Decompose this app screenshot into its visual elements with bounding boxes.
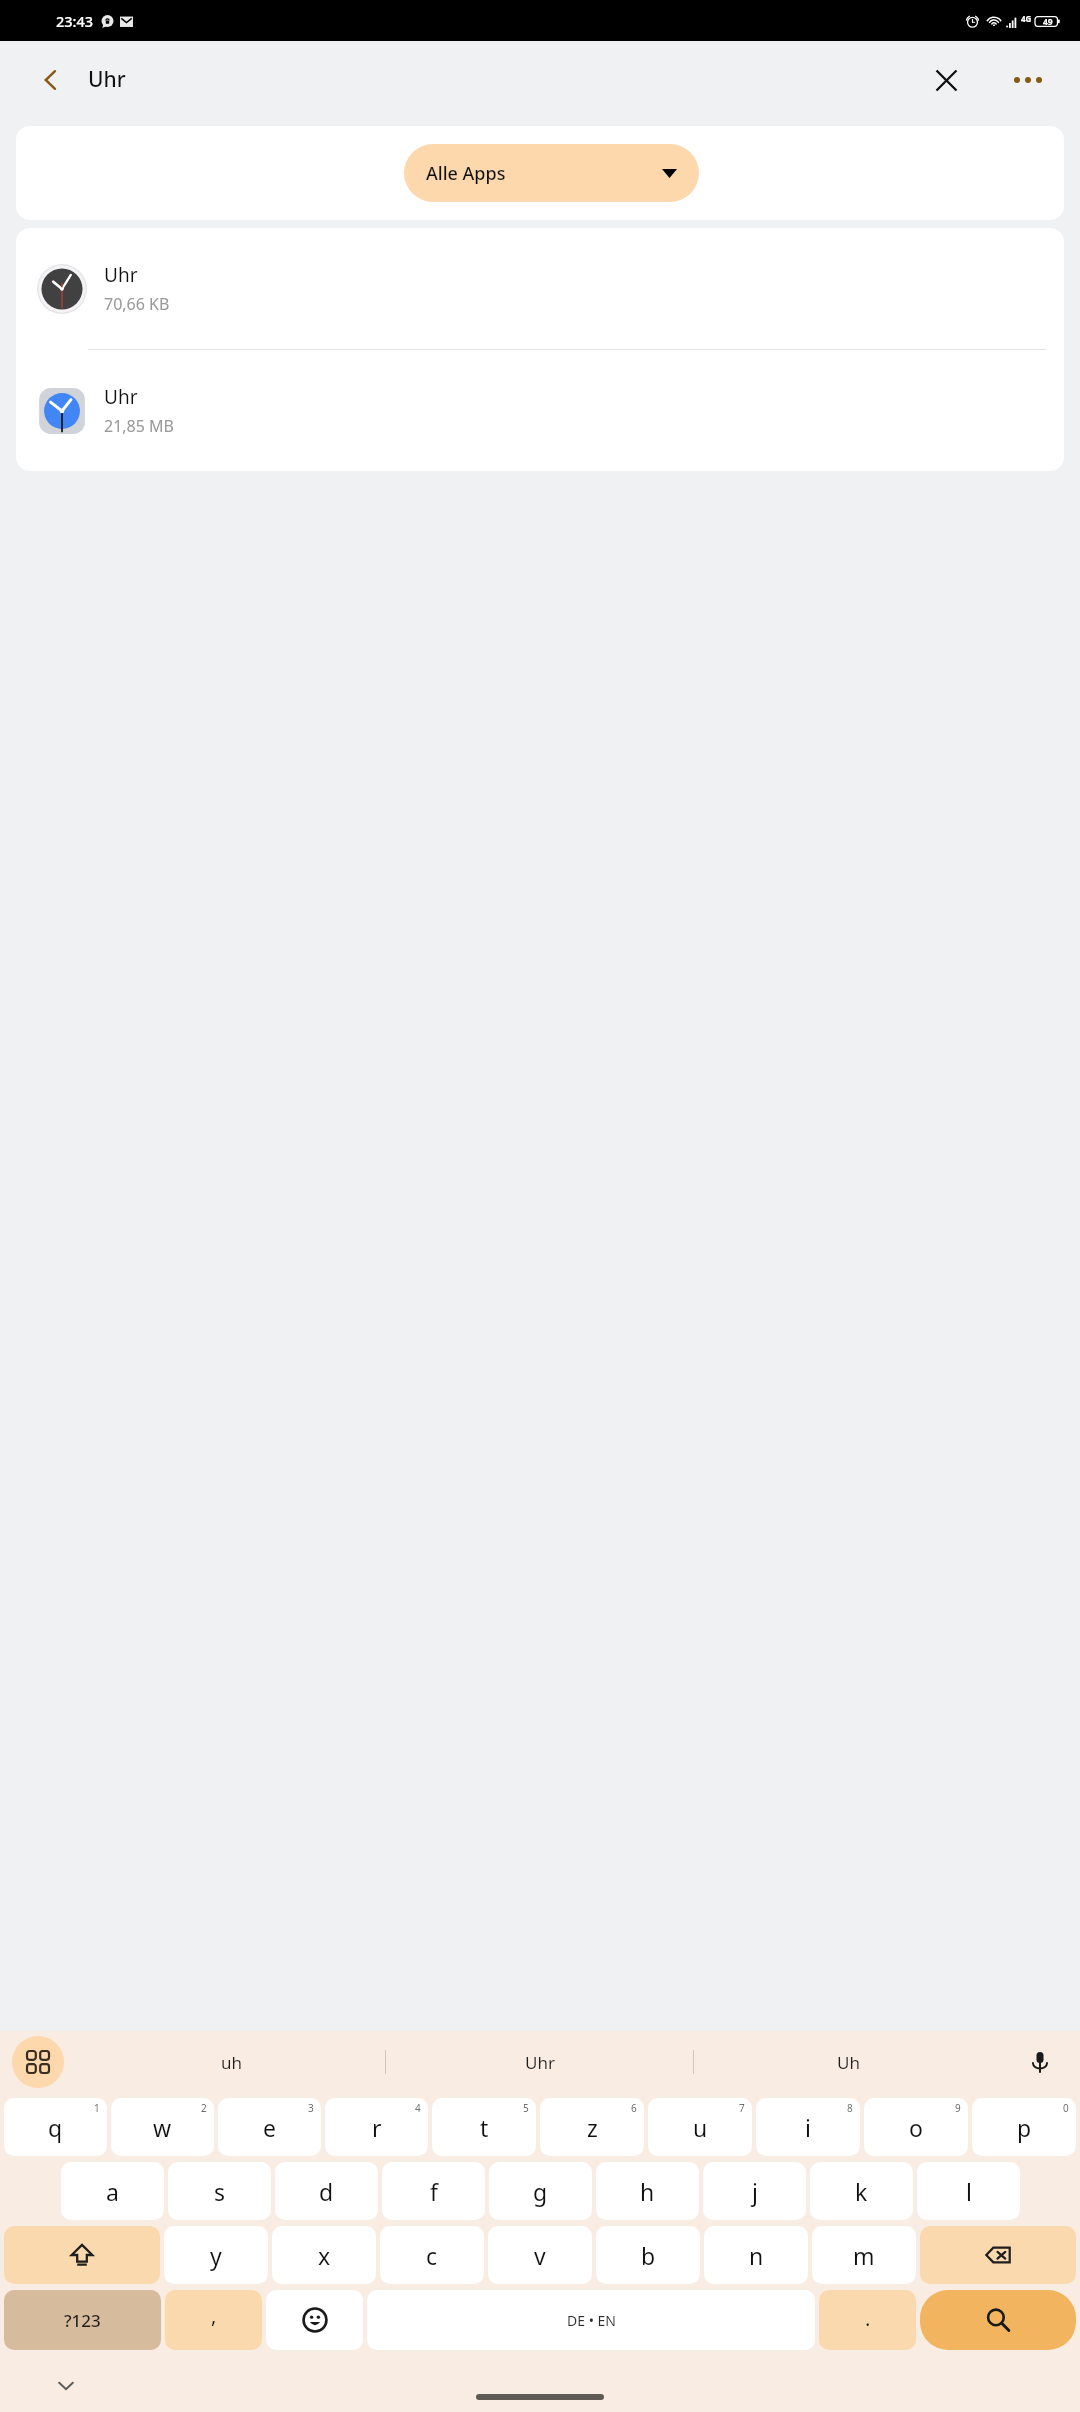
button[interactable]: Voice input [1018, 2040, 1062, 2084]
button[interactable]: Alle Apps [404, 144, 699, 202]
staticText: 5 [523, 2101, 529, 2115]
staticText: 8 [847, 2101, 853, 2115]
button[interactable]: 8 [756, 2098, 860, 2156]
button[interactable]: Backspace [920, 2226, 1076, 2284]
button[interactable]: Clear [918, 52, 974, 108]
staticText: c [426, 2240, 438, 2271]
button[interactable]: y [164, 2226, 268, 2284]
staticText: o [909, 2112, 923, 2143]
button[interactable]: Shift [4, 2226, 160, 2284]
button[interactable]: Keyboard menu [12, 2036, 64, 2088]
button[interactable]: f [382, 2162, 485, 2220]
staticText: . [865, 2305, 871, 2332]
button[interactable]: b [596, 2226, 700, 2284]
button[interactable]: k [810, 2162, 913, 2220]
staticText: 9 [955, 2101, 961, 2115]
button[interactable]: Search [920, 2290, 1076, 2350]
button[interactable]: a [61, 2162, 164, 2220]
staticText: f [430, 2176, 438, 2207]
button[interactable]: x [272, 2226, 376, 2284]
button[interactable]: Hide keyboard [46, 2366, 86, 2406]
staticText: h [640, 2176, 655, 2207]
button[interactable]: 7 [648, 2098, 752, 2156]
staticText: Uhr [525, 2051, 555, 2074]
button[interactable]: ?123 [4, 2290, 161, 2350]
button[interactable]: c [380, 2226, 484, 2284]
button[interactable]: uh [78, 2031, 386, 2093]
staticText: w [153, 2112, 172, 2143]
button[interactable]: 3 [218, 2098, 321, 2156]
staticText: g [533, 2176, 548, 2207]
staticText: 70,66 KB [104, 293, 170, 315]
button[interactable]: g [489, 2162, 592, 2220]
button[interactable]: 4 [325, 2098, 428, 2156]
staticText: s [214, 2176, 226, 2207]
staticText: t [480, 2112, 489, 2143]
staticText: z [587, 2112, 598, 2143]
staticText: x [318, 2240, 331, 2271]
staticText: 4 [415, 2101, 421, 2115]
staticText: 0 [1063, 2101, 1069, 2115]
button[interactable]: Back [24, 53, 78, 107]
staticText: i [805, 2112, 811, 2143]
staticText: 6 [631, 2101, 637, 2115]
button[interactable]: 6 [540, 2098, 644, 2156]
button[interactable]: Emoji [266, 2290, 363, 2350]
staticText: n [749, 2240, 764, 2271]
staticText: a [106, 2176, 119, 2207]
staticText: DE • EN [567, 2311, 616, 2330]
button[interactable]: 1 [4, 2098, 107, 2156]
button[interactable]: l [917, 2162, 1020, 2220]
staticText: y [210, 2240, 222, 2271]
button[interactable]: 5 [432, 2098, 536, 2156]
staticText: q [48, 2112, 63, 2143]
staticText: Alle Apps [426, 161, 506, 186]
button[interactable]: More options [1000, 52, 1056, 108]
button[interactable]: 0 [972, 2098, 1076, 2156]
staticText: 23:43 [56, 11, 94, 31]
button[interactable]: Uhr [16, 350, 1064, 471]
button[interactable]: , [165, 2290, 262, 2350]
staticText: l [966, 2176, 972, 2207]
staticText: 49 [1043, 16, 1053, 28]
staticText: p [1017, 2112, 1032, 2143]
button[interactable]: Uhr [16, 228, 1064, 349]
staticText: 7 [739, 2101, 745, 2115]
staticText: Uh [837, 2051, 860, 2074]
staticText: r [372, 2112, 382, 2143]
button[interactable]: j [703, 2162, 806, 2220]
staticText: 2 [201, 2101, 207, 2115]
staticText: 4G [1021, 13, 1032, 24]
staticText: v [534, 2240, 546, 2271]
button[interactable]: d [275, 2162, 378, 2220]
button[interactable]: n [704, 2226, 808, 2284]
staticText: 3 [308, 2101, 314, 2115]
button[interactable]: 2 [111, 2098, 214, 2156]
button[interactable]: h [596, 2162, 699, 2220]
staticText: d [319, 2176, 334, 2207]
staticText: b [641, 2240, 656, 2271]
staticText: Uhr [88, 65, 126, 94]
staticText: Uhr [104, 262, 138, 288]
staticText: j [752, 2176, 758, 2207]
staticText: 21,85 MB [104, 415, 174, 437]
staticText: e [263, 2112, 276, 2143]
staticText: uh [221, 2051, 243, 2074]
button[interactable]: s [168, 2162, 271, 2220]
button[interactable]: v [488, 2226, 592, 2284]
staticText: ?123 [64, 2309, 101, 2332]
button[interactable]: m [812, 2226, 916, 2284]
staticText: u [693, 2112, 708, 2143]
staticText: k [855, 2176, 868, 2207]
staticText: m [853, 2240, 875, 2271]
button[interactable]: 9 [864, 2098, 968, 2156]
button[interactable]: DE • EN [367, 2290, 815, 2350]
staticText: 1 [94, 2101, 100, 2115]
staticText: , [211, 2302, 217, 2329]
staticText: Uhr [104, 384, 138, 410]
button[interactable]: . [819, 2290, 916, 2350]
button[interactable]: Uhr [386, 2031, 694, 2093]
button[interactable]: Uh [694, 2031, 1002, 2093]
